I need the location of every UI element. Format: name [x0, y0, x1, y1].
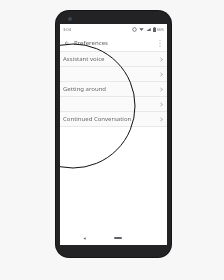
button[interactable]: More options [153, 36, 167, 50]
staticText [63, 70, 160, 78]
staticText [63, 100, 160, 108]
staticText: Getting around [63, 85, 160, 93]
button[interactable]: Continued Conversation [60, 112, 167, 126]
staticText: Continued Conversation [63, 115, 160, 123]
staticText: 66% [157, 27, 164, 32]
button[interactable]: Assistant voice [60, 52, 167, 66]
staticText: Assistant voice [63, 55, 160, 63]
button[interactable] [60, 97, 167, 111]
staticText: Preferences [74, 39, 153, 47]
button[interactable]: Home [112, 233, 124, 243]
button[interactable]: Getting around [60, 82, 167, 96]
button[interactable] [60, 67, 167, 81]
staticText: 3:04 [63, 27, 71, 32]
button[interactable]: Navigate up [60, 36, 74, 50]
button[interactable]: Back [79, 233, 89, 243]
